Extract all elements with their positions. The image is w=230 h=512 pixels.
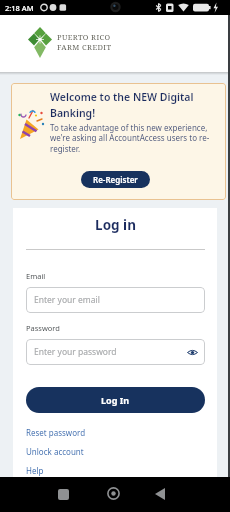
button[interactable]: Help [26,465,44,476]
button[interactable]: Log In [26,387,205,413]
staticText: FARM CREDIT [57,42,112,52]
staticText: Enter your password [34,346,117,358]
button[interactable]: Reset password [26,427,86,438]
staticText: 2:18 AM [5,3,34,13]
button[interactable] [53,484,73,504]
staticText: PUERTO RICO [57,32,111,42]
staticText: Email [26,271,46,281]
button[interactable] [150,484,170,504]
button[interactable]: Enter your password [26,339,205,365]
staticText: Password [26,323,60,333]
button[interactable]: Enter your email [26,287,205,313]
button[interactable]: Unlock account [26,446,84,457]
button[interactable] [103,483,124,504]
staticText: Enter your email [34,294,100,306]
staticText: Log In [101,394,130,406]
button[interactable]: Re-Register [81,171,150,188]
staticText: To take advantage of this new experience… [50,122,210,155]
staticText: Re-Register [93,174,138,185]
staticText: Welcome to the NEW Digital Banking! [50,90,194,120]
staticText: Log in [95,216,136,234]
